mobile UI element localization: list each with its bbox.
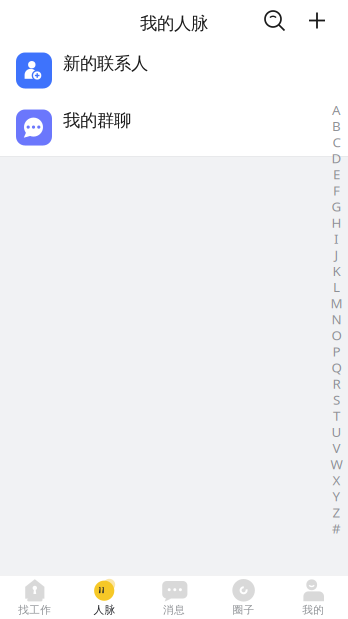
staticText: C — [332, 133, 340, 151]
button[interactable]: 圈子 — [209, 578, 278, 616]
staticText: # — [332, 519, 341, 537]
staticText: D — [331, 149, 341, 167]
button[interactable]: 我的 — [278, 578, 348, 616]
staticText: R — [332, 375, 340, 392]
staticText: 找工作 — [18, 603, 51, 616]
staticText: E — [333, 165, 340, 183]
staticText: 我的人脉 — [140, 13, 208, 34]
staticText: X — [332, 471, 340, 489]
staticText: Z — [332, 503, 340, 521]
button[interactable]: Search — [258, 6, 288, 36]
staticText: N — [331, 310, 341, 328]
staticText: 人脉 — [93, 603, 115, 616]
staticText: 消息 — [163, 603, 185, 616]
staticText: A — [332, 101, 341, 119]
staticText: B — [332, 117, 341, 135]
button[interactable]: 人脉 — [70, 578, 139, 616]
staticText: L — [333, 278, 340, 296]
staticText: O — [331, 326, 341, 344]
staticText: 圈子 — [233, 603, 255, 616]
button[interactable]: 新的联系人 — [0, 42, 348, 99]
staticText: V — [332, 439, 340, 457]
staticText: Q — [331, 358, 341, 376]
staticText: H — [331, 214, 341, 231]
staticText: T — [333, 407, 340, 424]
staticText: I — [334, 230, 339, 247]
staticText: U — [331, 423, 341, 441]
button[interactable]: Add — [302, 6, 332, 36]
staticText: M — [330, 294, 342, 312]
staticText: 我的群聊 — [63, 110, 131, 131]
button[interactable]: 消息 — [139, 578, 209, 616]
staticText: F — [333, 181, 340, 199]
staticText: 我的 — [302, 603, 324, 616]
staticText: G — [331, 197, 341, 215]
staticText: K — [332, 262, 340, 280]
button[interactable]: 找工作 — [0, 578, 70, 616]
staticText: 新的联系人 — [63, 53, 148, 74]
staticText: S — [333, 391, 340, 408]
button[interactable]: 我的群聊 — [0, 99, 348, 156]
staticText: W — [330, 455, 342, 473]
staticText: Y — [332, 487, 340, 505]
staticText: J — [334, 246, 338, 263]
staticText: P — [332, 342, 340, 360]
